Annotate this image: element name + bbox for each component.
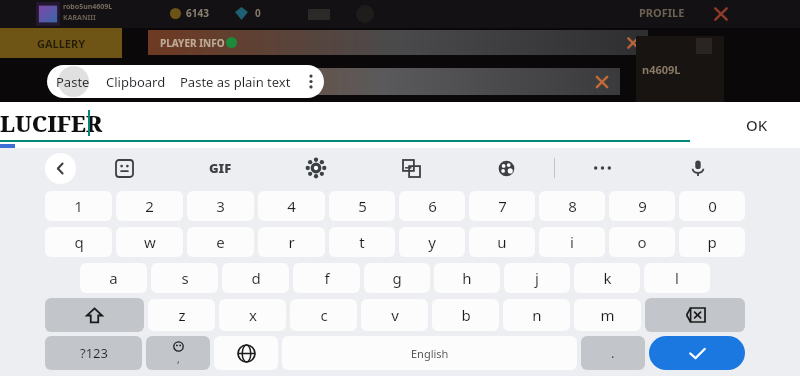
staticText: m <box>600 305 615 325</box>
button[interactable]: Shift <box>45 298 144 332</box>
button[interactable]: 0 <box>679 191 745 221</box>
button[interactable]: x <box>219 299 286 331</box>
staticText: Paste <box>56 73 90 91</box>
button[interactable]: Settings <box>268 148 364 188</box>
button[interactable]: g <box>364 263 430 293</box>
staticText: x <box>249 305 257 325</box>
button[interactable]: w <box>116 227 183 257</box>
staticText: 2 <box>145 196 154 216</box>
button[interactable]: q <box>45 227 112 257</box>
button[interactable]: Theme <box>459 148 554 188</box>
button[interactable]: a <box>80 263 147 293</box>
button[interactable]: l <box>644 263 710 293</box>
button[interactable]: More <box>555 148 650 188</box>
staticText: GIF <box>209 159 232 177</box>
button[interactable]: 6 <box>399 191 465 221</box>
button[interactable]: Close dialog <box>592 72 612 92</box>
staticText: o <box>637 232 647 252</box>
button[interactable]: Emoji and comma <box>146 336 210 370</box>
staticText: j <box>535 268 539 288</box>
button[interactable]: t <box>329 227 395 257</box>
button[interactable]: b <box>432 299 499 331</box>
staticText: k <box>603 268 612 288</box>
button[interactable]: c <box>290 299 357 331</box>
staticText: f <box>324 268 330 288</box>
button[interactable]: 8 <box>539 191 605 221</box>
button[interactable]: GIF <box>172 148 268 188</box>
button[interactable]: n <box>503 299 570 331</box>
button[interactable]: Voice input <box>650 148 745 188</box>
button[interactable]: Change language <box>214 336 278 370</box>
button[interactable]: Backspace <box>645 298 745 332</box>
staticText: t <box>359 232 365 252</box>
staticText: e <box>216 232 225 252</box>
staticText: z <box>178 305 186 325</box>
button[interactable]: r <box>258 227 325 257</box>
button[interactable]: Period <box>581 336 645 370</box>
button[interactable]: More options <box>298 65 324 98</box>
button[interactable]: k <box>574 263 640 293</box>
button[interactable]: v <box>361 299 428 331</box>
staticText: 0 <box>255 6 261 20</box>
button[interactable]: e <box>187 227 254 257</box>
staticText: q <box>74 232 84 252</box>
button[interactable]: d <box>222 263 289 293</box>
button[interactable]: Clipboard <box>99 65 173 98</box>
button[interactable]: m <box>574 299 641 331</box>
staticText: 6143 <box>186 6 209 20</box>
button[interactable]: Close <box>710 3 732 25</box>
button[interactable]: Paste as plain text <box>173 65 298 98</box>
button[interactable]: s <box>151 263 218 293</box>
staticText: l <box>675 268 679 288</box>
staticText: 0 <box>708 196 717 216</box>
staticText: ?123 <box>80 344 108 362</box>
staticText: GALLERY <box>37 36 86 51</box>
staticText: 5 <box>358 196 367 216</box>
button[interactable]: PROFILE <box>639 5 685 20</box>
staticText: 7 <box>498 196 507 216</box>
staticText: robo5un4609L <box>63 2 113 12</box>
staticText: h <box>462 268 472 288</box>
button[interactable]: z <box>148 299 215 331</box>
button[interactable]: j <box>504 263 570 293</box>
button[interactable]: 2 <box>116 191 183 221</box>
staticText: Clipboard <box>106 73 166 91</box>
button[interactable]: f <box>293 263 360 293</box>
staticText: d <box>251 268 261 288</box>
staticText: s <box>181 268 189 288</box>
button[interactable]: Translate <box>364 148 459 188</box>
button[interactable]: Enter <box>649 336 745 370</box>
button[interactable]: Stickers <box>76 148 172 188</box>
staticText: n4609L <box>642 62 681 77</box>
staticText: r <box>288 232 295 252</box>
button[interactable]: Paste <box>47 65 99 98</box>
staticText: w <box>144 232 156 252</box>
button[interactable]: OK <box>738 109 776 141</box>
button[interactable]: y <box>399 227 465 257</box>
staticText: 1 <box>74 196 83 216</box>
button[interactable]: u <box>469 227 535 257</box>
button[interactable]: 1 <box>45 191 112 221</box>
button[interactable]: 4 <box>258 191 325 221</box>
button[interactable]: 5 <box>329 191 395 221</box>
button[interactable]: p <box>679 227 745 257</box>
staticText: b <box>461 305 471 325</box>
button[interactable]: LUCIFER <box>0 108 103 138</box>
button[interactable]: Space <box>282 336 577 370</box>
staticText: KARANIII <box>63 13 96 23</box>
staticText: 8 <box>568 196 577 216</box>
button[interactable]: 3 <box>187 191 254 221</box>
button[interactable]: 9 <box>609 191 675 221</box>
staticText: i <box>570 232 574 252</box>
button[interactable]: 7 <box>469 191 535 221</box>
button[interactable]: Close player info <box>624 34 642 52</box>
staticText: 9 <box>638 196 647 216</box>
button[interactable]: o <box>609 227 675 257</box>
staticText: 4 <box>287 196 296 216</box>
button[interactable]: h <box>434 263 500 293</box>
button[interactable]: GALLERY <box>0 28 122 58</box>
button[interactable]: i <box>539 227 605 257</box>
staticText: LUCIFER <box>0 108 103 138</box>
button[interactable]: Symbols <box>45 336 142 370</box>
button[interactable]: Back <box>45 153 76 184</box>
